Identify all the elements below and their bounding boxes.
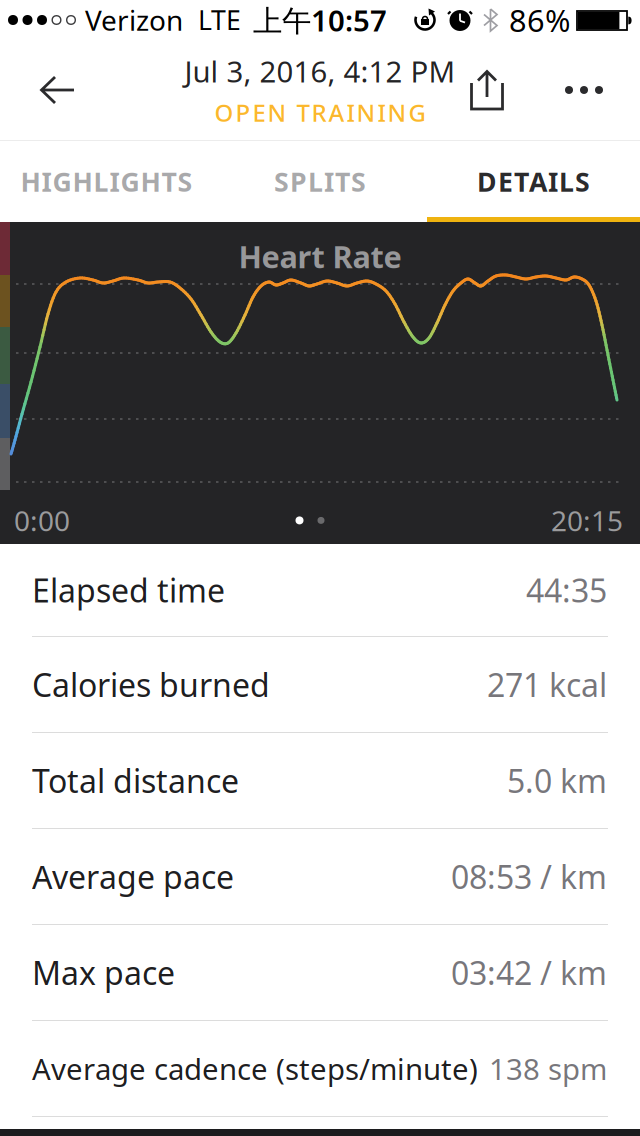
- button[interactable]: DETAILS: [427, 141, 640, 222]
- staticText: Calories burned: [32, 663, 270, 706]
- staticText: 20:15: [551, 502, 623, 539]
- staticText: LTE: [198, 2, 241, 38]
- staticText: 5.0 km: [507, 759, 607, 802]
- staticText: OPEN TRAINING: [214, 96, 425, 128]
- staticText: Average cadence (steps/minute): [32, 1049, 478, 1088]
- staticText: HIGHLIGHTS: [20, 164, 192, 199]
- staticText: 08:53 / km: [451, 855, 607, 898]
- button[interactable]: More: [549, 54, 619, 126]
- staticText: Average pace: [32, 855, 234, 898]
- staticText: DETAILS: [477, 164, 590, 199]
- staticText: 86%: [509, 0, 570, 40]
- staticText: 44:35: [526, 569, 607, 611]
- staticText: Elapsed time: [32, 569, 225, 611]
- staticText: Max pace: [32, 951, 175, 994]
- staticText: Heart Rate: [238, 236, 401, 277]
- button[interactable]: Share: [455, 54, 519, 126]
- button[interactable]: Back: [0, 54, 96, 126]
- staticText: 上午10:57: [253, 0, 387, 39]
- staticText: 138 spm: [489, 1049, 607, 1088]
- staticText: 03:42 / km: [451, 951, 607, 994]
- button[interactable]: SPLITS: [213, 141, 427, 222]
- staticText: 0:00: [14, 502, 70, 539]
- staticText: 271 kcal: [487, 663, 607, 706]
- staticText: SPLITS: [274, 164, 366, 199]
- button[interactable]: HIGHLIGHTS: [0, 141, 213, 222]
- staticText: Verizon: [85, 1, 183, 39]
- staticText: Total distance: [32, 759, 239, 802]
- staticText: Jul 3, 2016, 4:12 PM: [184, 52, 455, 91]
